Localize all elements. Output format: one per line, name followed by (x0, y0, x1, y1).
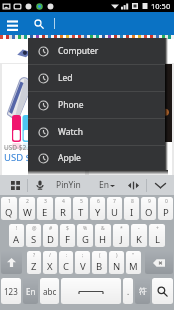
staticText: N (113, 260, 121, 273)
staticText: PinYin (56, 179, 81, 191)
staticText: USD $1.29 (4, 151, 50, 164)
button[interactable]: $ (60, 224, 75, 247)
staticText: T (78, 206, 84, 219)
staticText: Apple (58, 152, 81, 164)
staticText: + (156, 225, 159, 232)
button[interactable]: abc (40, 278, 59, 304)
button[interactable]: * (113, 224, 129, 247)
button[interactable]: 4 (55, 197, 71, 220)
button[interactable]: Watch (28, 119, 165, 145)
button[interactable]: Computer (28, 38, 165, 64)
button[interactable]: En (23, 278, 38, 304)
staticText: ! (16, 225, 18, 232)
button[interactable]: Menu (3, 15, 21, 33)
button[interactable]: : (59, 251, 73, 274)
staticText: # (49, 225, 53, 232)
staticText: 1 (8, 198, 11, 205)
button[interactable]: Move cursor (126, 178, 140, 192)
staticText: . (127, 286, 130, 297)
staticText: H (99, 233, 107, 246)
staticText: V (80, 260, 86, 273)
staticText: 0 (165, 198, 168, 205)
button[interactable]: Voice input (33, 178, 47, 192)
staticText: S (31, 233, 37, 246)
button[interactable]: ( (92, 251, 107, 274)
staticText: 4 (62, 198, 65, 205)
button[interactable]: 7 (107, 197, 122, 220)
staticText: & (101, 225, 105, 232)
staticText: A (13, 233, 20, 246)
button[interactable]: Shift (1, 251, 22, 274)
button[interactable]: Led (28, 65, 165, 91)
staticText: D (47, 233, 54, 246)
staticText: - (138, 225, 140, 232)
staticText: 符 (139, 286, 147, 296)
button[interactable]: 0 (158, 197, 173, 220)
button[interactable]: Phone (28, 92, 165, 118)
staticText: E (42, 206, 48, 219)
button[interactable]: 5 (73, 197, 88, 220)
staticText: Watch (58, 126, 83, 138)
staticText: X (47, 260, 53, 273)
staticText: Phone (58, 99, 84, 111)
button[interactable]: / (43, 251, 57, 274)
staticText: ? (33, 252, 36, 259)
staticText: 10:50 (151, 1, 171, 11)
staticText: U (111, 206, 118, 219)
button[interactable]: Search (152, 278, 173, 304)
staticText: K (136, 233, 142, 246)
button[interactable]: @ (26, 224, 41, 247)
staticText: / (49, 252, 51, 259)
button[interactable]: - (131, 224, 147, 247)
staticText: USD $2.89 (4, 143, 36, 152)
button[interactable]: ; (75, 251, 90, 274)
staticText: 3 (44, 198, 47, 205)
staticText: Y (95, 206, 101, 219)
button[interactable]: ! (9, 224, 24, 247)
button[interactable]: Keyboard layout (7, 177, 23, 193)
staticText: 8 (131, 198, 134, 205)
button[interactable]: ? (27, 251, 41, 274)
staticText: 6 (97, 198, 100, 205)
button[interactable]: ) (109, 251, 124, 274)
staticText: abc (43, 286, 57, 297)
button[interactable]: 6 (90, 197, 105, 220)
staticText: * (120, 225, 123, 232)
staticText: ( (99, 252, 101, 259)
button[interactable]: 123 (1, 278, 21, 304)
staticText: J (120, 233, 123, 246)
staticText: ; (82, 252, 84, 259)
button[interactable]: 9 (141, 197, 156, 220)
button[interactable]: + (149, 224, 165, 247)
staticText: W (23, 206, 32, 219)
button[interactable]: Apple (28, 146, 165, 170)
button[interactable]: Backspace (145, 251, 173, 274)
staticText: P (163, 206, 169, 219)
button[interactable]: # (43, 224, 58, 247)
staticText: 9 (148, 198, 151, 205)
button[interactable]: Hide keyboard (152, 177, 168, 193)
staticText: Computer (58, 45, 99, 57)
button[interactable]: " (126, 251, 141, 274)
button[interactable]: 符 (135, 278, 150, 304)
button[interactable]: 1 (1, 197, 17, 220)
staticText: " (132, 252, 135, 259)
staticText: B (96, 260, 103, 273)
staticText: Q (5, 206, 13, 219)
button[interactable]: Search (32, 17, 46, 31)
staticText: I (130, 206, 134, 219)
button[interactable]: & (95, 224, 111, 247)
button[interactable]: Space (61, 278, 121, 304)
staticText: 5 (80, 198, 83, 205)
staticText: G (82, 233, 89, 246)
staticText: O (145, 206, 153, 219)
staticText: Z (31, 260, 37, 273)
button[interactable]: . (123, 278, 133, 304)
button[interactable]: % (77, 224, 93, 247)
button[interactable]: 3 (37, 197, 53, 220)
button[interactable]: 2 (19, 197, 35, 220)
button[interactable]: En (99, 179, 115, 191)
staticText: R (60, 206, 66, 219)
button[interactable]: 8 (124, 197, 139, 220)
